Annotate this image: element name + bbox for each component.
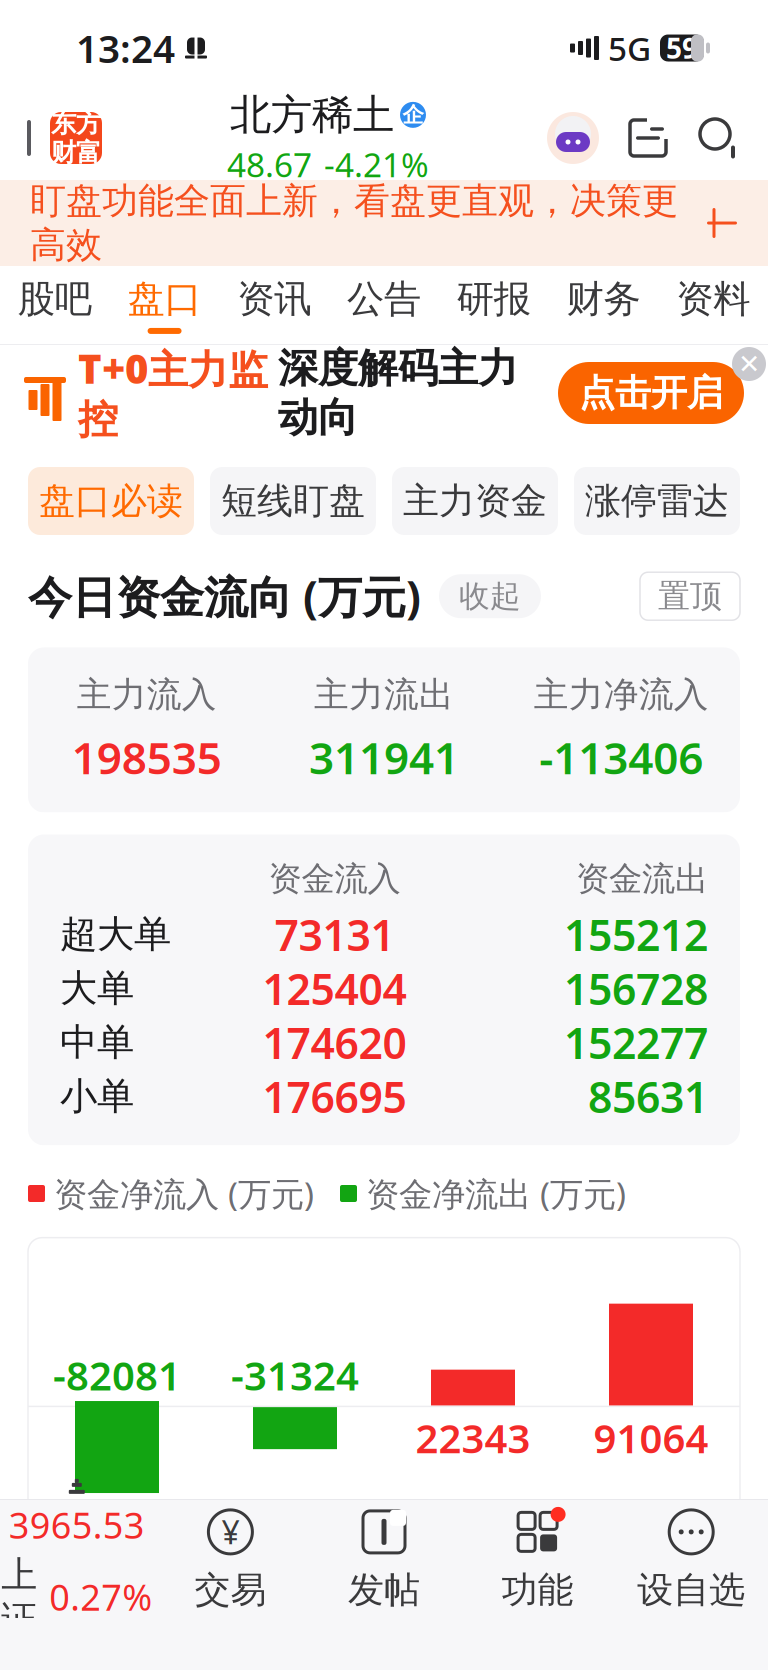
staticText: 短线盯盘 — [221, 479, 365, 523]
staticText: 156728 — [564, 960, 708, 1017]
button[interactable]: 3965.53 — [0, 1500, 154, 1618]
staticText: ¥ — [221, 1511, 239, 1553]
staticText: 85631 — [588, 1068, 708, 1125]
button[interactable]: 设自选 — [614, 1500, 768, 1618]
staticText: 152277 — [564, 1014, 708, 1071]
staticText: -113406 — [539, 728, 703, 786]
staticText: 点击开启 — [579, 371, 723, 415]
staticText: 59 — [666, 29, 698, 67]
staticText: 73131 — [274, 906, 394, 963]
staticText: 176695 — [262, 1068, 406, 1125]
staticText: 311941 — [309, 728, 459, 786]
button[interactable]: 研报 — [439, 266, 549, 344]
button[interactable]: 关闭广告 — [732, 347, 766, 381]
staticText: 198535 — [72, 728, 222, 786]
staticText: 财富 — [51, 137, 101, 168]
staticText: 净小单 — [597, 1495, 705, 1539]
staticText: 资金流入 — [268, 858, 400, 899]
staticText: 收起 — [459, 577, 521, 615]
button[interactable]: 资讯 — [219, 266, 329, 344]
staticText: 置顶 — [658, 577, 722, 616]
staticText: 174620 — [262, 1014, 406, 1071]
button[interactable]: 智能助手 — [546, 111, 600, 165]
staticText: 净超大 — [63, 1501, 171, 1545]
button[interactable]: 功能 — [461, 1500, 614, 1618]
staticText: 深度解码主力动向 — [278, 344, 518, 442]
staticText: T+0主力监控 — [78, 342, 268, 444]
staticText: 0.27% — [49, 1573, 152, 1621]
staticText: 股吧 — [18, 276, 92, 322]
button[interactable]: 公告 — [329, 266, 439, 344]
button[interactable]: 盘口 — [110, 266, 219, 344]
staticText: 主力流入 — [77, 673, 217, 716]
button[interactable]: 财务 — [549, 266, 658, 344]
staticText: 中单 — [60, 1019, 134, 1065]
staticText: 主力资金 — [403, 479, 547, 523]
button[interactable]: 短线盯盘 — [210, 467, 376, 535]
staticText: 超大单 — [60, 911, 171, 957]
staticText: 东方 — [51, 108, 101, 139]
staticText: 48.67 — [227, 142, 312, 187]
button[interactable]: 盘口必读 — [28, 467, 194, 535]
staticText: 企 — [402, 102, 423, 128]
staticText: 155212 — [564, 906, 708, 963]
button[interactable]: ¥ — [154, 1500, 307, 1618]
staticText: 盯盘功能全面上新，看盘更直观，决策更高效 — [30, 179, 678, 267]
staticText: 主力流出 — [314, 673, 454, 716]
staticText: -82081 — [53, 1348, 181, 1402]
staticText: 5G — [608, 26, 651, 70]
staticText: 资金净流出 (万元) — [366, 1171, 626, 1216]
button[interactable]: 股吧 — [0, 266, 110, 344]
button[interactable]: 发帖 — [307, 1500, 461, 1618]
staticText: 资金净流入 (万元) — [54, 1171, 314, 1216]
staticText: 净中单 — [419, 1495, 527, 1539]
staticText: 资金流出 — [576, 858, 708, 899]
staticText: ✕ — [738, 349, 760, 379]
staticText: 今日资金流向 (万元) — [28, 567, 421, 625]
staticText: 125404 — [262, 960, 406, 1017]
button[interactable]: 收起 — [439, 574, 541, 618]
button[interactable]: T+0主力监控 — [0, 347, 768, 439]
staticText: 盘口必读 — [39, 479, 183, 523]
staticText: 91064 — [593, 1411, 708, 1464]
staticText: 设自选 — [637, 1568, 745, 1612]
staticText: 净大单 — [241, 1495, 349, 1539]
button[interactable]: 分享 — [626, 116, 670, 160]
button[interactable]: 置顶 — [640, 572, 740, 620]
staticText: 13:24 — [76, 22, 175, 74]
staticText: 研报 — [457, 276, 531, 322]
staticText: 大单 — [60, 965, 134, 1011]
staticText: 3965.53 — [9, 1501, 145, 1549]
staticText: 资讯 — [237, 276, 311, 322]
staticText: 资料 — [676, 276, 750, 322]
button[interactable]: 盯盘功能全面上新，看盘更直观，决策更高效 — [0, 180, 768, 266]
staticText: 盘口 — [128, 276, 202, 322]
button[interactable]: 返回 — [0, 96, 110, 180]
staticText: 22343 — [415, 1411, 530, 1464]
button[interactable]: 搜索 — [696, 115, 742, 161]
staticText: 上证 — [1, 1553, 37, 1641]
staticText: 北方稀土 — [230, 89, 394, 140]
staticText: -4.21% — [324, 142, 429, 187]
staticText: 涨停雷达 — [585, 479, 729, 523]
button[interactable]: 主力资金 — [392, 467, 558, 535]
staticText: 功能 — [502, 1568, 574, 1612]
staticText: 小单 — [60, 1073, 134, 1119]
staticText: 公告 — [347, 276, 421, 322]
button[interactable]: 资料 — [658, 266, 768, 344]
staticText: 交易 — [194, 1568, 266, 1612]
staticText: -31324 — [231, 1348, 359, 1402]
button[interactable]: 涨停雷达 — [574, 467, 740, 535]
staticText: 财务 — [566, 276, 640, 322]
staticText: 发帖 — [348, 1568, 420, 1612]
staticText: 主力净流入 — [534, 673, 709, 716]
